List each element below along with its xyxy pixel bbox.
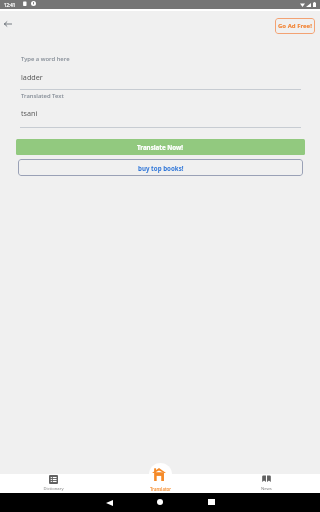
button[interactable]: Home (150, 492, 170, 511)
button[interactable]: Translate Now! (16, 139, 305, 155)
button[interactable]: Translator (106, 463, 213, 493)
staticText: Dictionary (43, 486, 64, 492)
staticText: Translator (150, 486, 171, 492)
button[interactable]: Back (99, 493, 119, 512)
staticText: 12:41 (4, 2, 16, 8)
button[interactable]: buy top books! (18, 159, 303, 176)
staticText: Go Ad Free! (278, 22, 312, 30)
staticText: News (261, 486, 272, 492)
staticText: tsani (21, 108, 38, 118)
staticText: buy top books! (138, 164, 184, 172)
button[interactable]: Go Ad Free! (275, 18, 315, 34)
button[interactable]: Dictionary (0, 463, 106, 493)
button[interactable]: Recents (201, 492, 221, 511)
staticText: ladder (21, 72, 43, 82)
staticText: Translated Text (21, 92, 64, 100)
button[interactable]: Back (0, 16, 16, 32)
button[interactable]: News (213, 463, 320, 493)
staticText: Translate Now! (137, 143, 184, 151)
staticText: Type a word here (21, 55, 70, 63)
